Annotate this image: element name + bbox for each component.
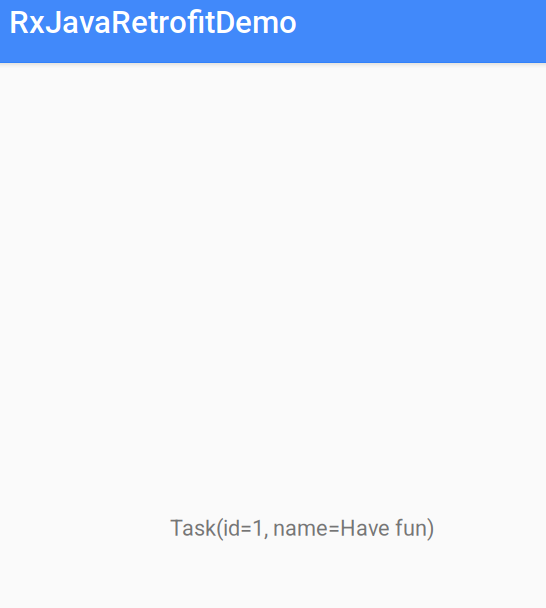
staticText: Task(id=1, name=Have fun) xyxy=(170,515,435,541)
staticText: RxJavaRetrofitDemo xyxy=(9,4,297,41)
